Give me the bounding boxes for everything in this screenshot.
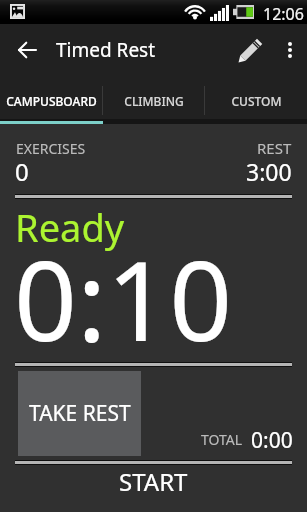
- staticText: TOTAL: [201, 430, 243, 449]
- button[interactable]: Edit: [232, 24, 268, 76]
- button[interactable]: TAKE REST: [18, 371, 141, 456]
- button[interactable]: More options: [274, 24, 305, 76]
- staticText: 0:00: [251, 426, 293, 455]
- staticText: REST: [257, 138, 292, 158]
- staticText: 12:06: [263, 3, 304, 25]
- staticText: 0:10: [14, 223, 233, 373]
- staticText: Ready: [15, 201, 125, 253]
- button[interactable]: CAMPUSBOARD: [0, 76, 103, 124]
- staticText: 0: [15, 155, 29, 188]
- staticText: EXERCISES: [16, 139, 86, 158]
- button[interactable]: CUSTOM: [205, 76, 307, 124]
- staticText: TAKE REST: [29, 399, 131, 428]
- button[interactable]: START: [0, 465, 307, 497]
- staticText: CUSTOM: [231, 93, 282, 109]
- staticText: 3:00: [246, 156, 292, 187]
- staticText: CAMPUSBOARD: [6, 93, 97, 109]
- button[interactable]: Navigate up: [4, 24, 49, 76]
- staticText: Timed Rest: [56, 37, 156, 63]
- staticText: CLIMBING: [124, 93, 184, 109]
- staticText: START: [119, 465, 188, 497]
- button[interactable]: CLIMBING: [103, 76, 205, 124]
